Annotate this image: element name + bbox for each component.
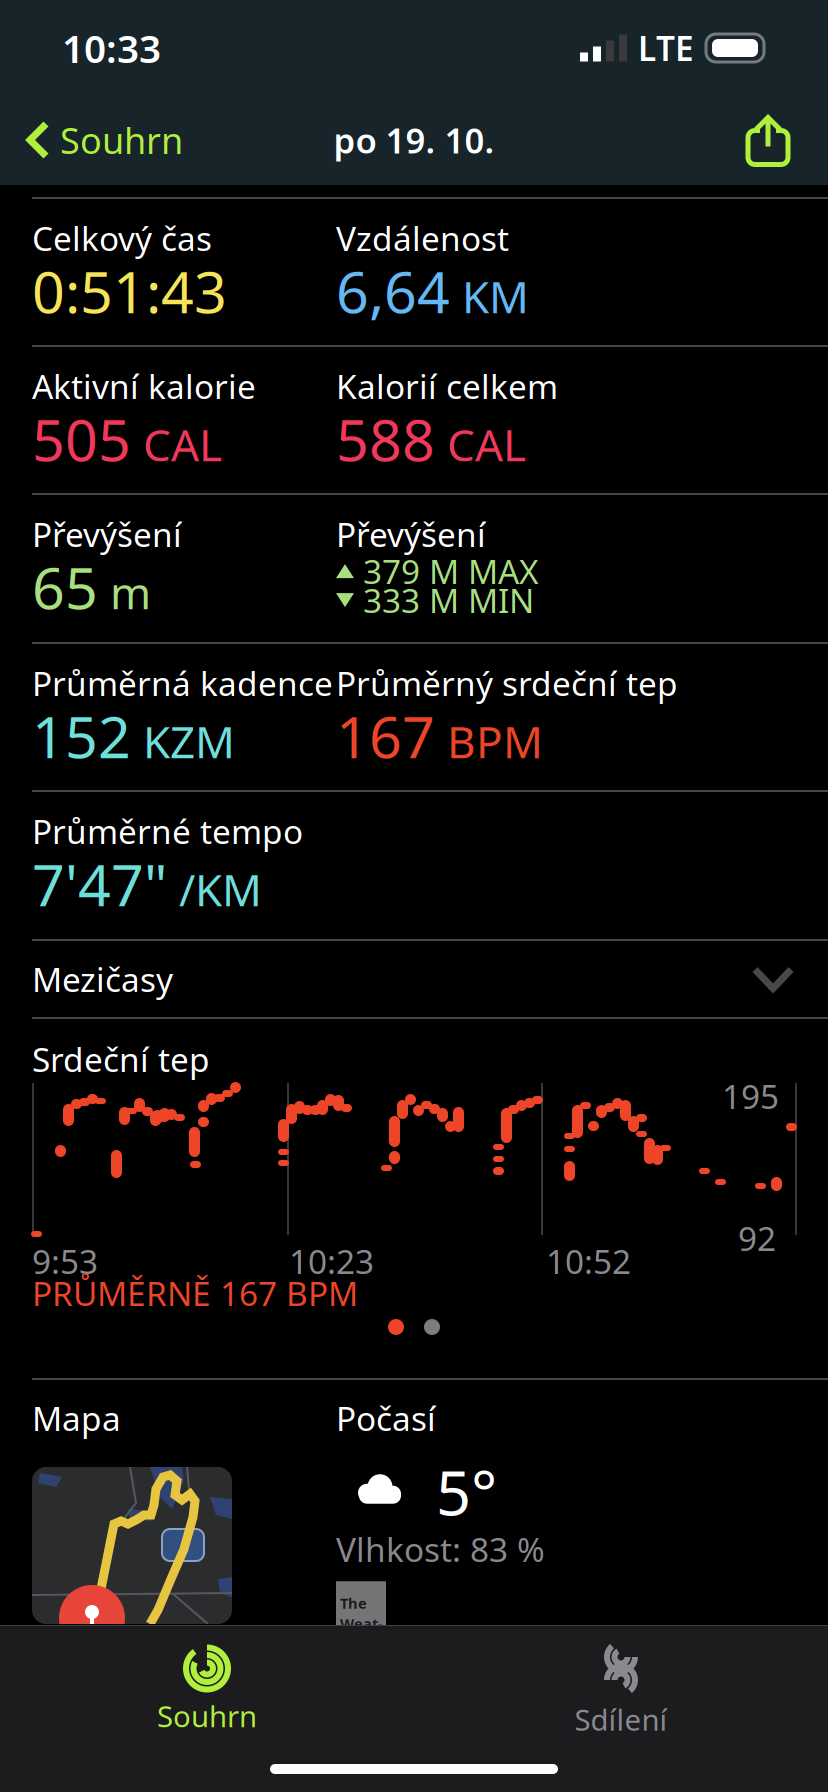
staticText: The [340,1593,367,1613]
staticText: Souhrn [157,1696,257,1735]
button[interactable]: Mezičasy [0,941,828,1017]
staticText: 10:33 [62,22,161,74]
staticText: Sdílení [574,1700,667,1739]
button[interactable]: Sdílení [414,1626,828,1749]
staticText: Souhrn [60,116,183,164]
staticText: Vlhkost: 83 % [336,1527,545,1571]
staticText: Převýšení [336,512,486,556]
staticText: Kalorií celkem [336,364,558,408]
staticText: 5° [436,1451,497,1532]
staticText: Mezičasy [32,957,173,1001]
staticText: 379 M MAX [363,549,539,593]
staticText: 505 [32,401,131,477]
staticText: Aktivní kalorie [32,364,256,408]
staticText: KM [462,267,529,325]
staticText: 10:52 [546,1239,631,1283]
staticText: /KM [179,860,262,918]
staticText: Převýšení [32,512,182,556]
staticText: Mapa [32,1396,121,1440]
button[interactable]: Souhrn [0,96,201,184]
staticText: 195 [722,1074,779,1118]
staticText: m [110,563,151,621]
staticText: 7'47" [32,846,167,922]
staticText: Srdeční tep [32,1037,210,1081]
staticText: CAL [143,415,222,473]
staticText: LTE [638,26,694,70]
staticText: po 19. 10. [333,117,494,163]
staticText: 588 [336,401,435,477]
staticText: 92 [738,1216,776,1260]
staticText: 0:51:43 [32,253,227,329]
staticText: Průměrné tempo [32,809,303,853]
staticText: 6,64 [336,253,450,329]
staticText: 152 [32,698,131,774]
staticText: PRŮMĚRNĚ 167 BPM [32,1271,358,1315]
staticText: 333 M MIN [363,578,534,622]
staticText: Weather [340,1614,383,1653]
staticText: 65 [32,549,98,625]
button[interactable]: Souhrn [0,1629,414,1745]
staticText: KZM [143,712,235,770]
staticText: 9:53 [32,1239,98,1283]
staticText: Počasí [336,1396,436,1440]
staticText: 167 [336,698,435,774]
staticText: Průměrná kadence [32,661,333,705]
button[interactable]: Share [729,96,828,184]
staticText: Vzdálenost [336,216,509,260]
staticText: 10:23 [289,1239,374,1283]
staticText: CAL [447,415,526,473]
staticText: BPM [447,712,543,770]
staticText: Průměrný srdeční tep [336,661,678,705]
staticText: Celkový čas [32,216,212,260]
